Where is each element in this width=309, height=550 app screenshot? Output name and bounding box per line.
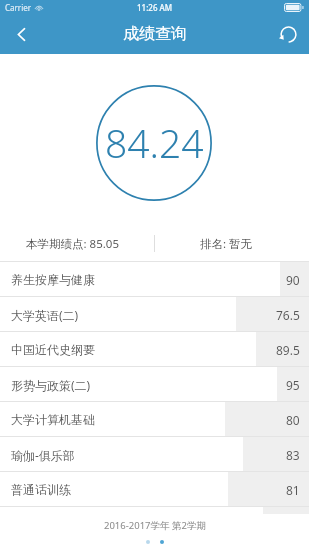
staticText: 11:26 AM <box>137 2 173 13</box>
staticText: 90 <box>286 272 300 288</box>
staticText: 89.5 <box>276 342 300 358</box>
staticText: 80 <box>286 412 300 428</box>
button[interactable]: 瑜伽-俱乐部 <box>0 437 309 472</box>
button[interactable]: 形势与政策(二) <box>0 367 309 402</box>
staticText: 中国近代史纲要 <box>11 342 95 357</box>
button[interactable]: Back <box>0 14 42 54</box>
staticText: 瑜伽-俱乐部 <box>11 447 75 463</box>
staticText: 2016-2017学年 第2学期 <box>104 519 206 532</box>
staticText: 81 <box>286 482 300 498</box>
staticText: Carrier <box>5 2 32 13</box>
staticText: 本学期绩点: 85.05 <box>26 236 119 252</box>
button[interactable]: 大学英语(二) <box>0 297 309 332</box>
staticText: 95 <box>286 377 300 393</box>
button[interactable]: Page 1 <box>146 540 150 544</box>
button[interactable]: Page 2 <box>160 540 164 544</box>
button[interactable]: Refresh <box>267 14 309 54</box>
button[interactable]: 中国近代史纲要 <box>0 332 309 367</box>
staticText: 大学英语(二) <box>11 307 79 323</box>
button[interactable]: 大学计算机基础 <box>0 402 309 437</box>
staticText: 形势与政策(二) <box>11 377 91 393</box>
button[interactable]: 普通话训练 <box>0 472 309 507</box>
staticText: 普通话训练 <box>11 482 71 497</box>
button[interactable]: 养生按摩与健康 <box>0 262 309 297</box>
staticText: 大学计算机基础 <box>11 412 95 427</box>
staticText: 成绩查询 <box>123 24 187 44</box>
staticText: 76.5 <box>276 307 300 323</box>
staticText: 84.24 <box>105 116 204 169</box>
staticText: 83 <box>286 447 300 463</box>
button[interactable]: 中国文化概论 <box>0 507 309 542</box>
staticText: 排名: 暂无 <box>200 236 253 252</box>
staticText: 养生按摩与健康 <box>11 272 95 287</box>
